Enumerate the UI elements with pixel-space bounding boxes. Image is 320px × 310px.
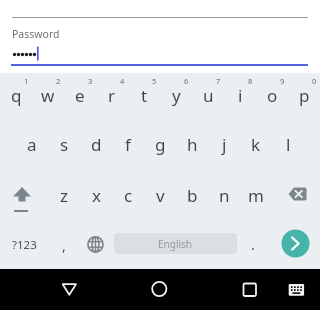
button[interactable]: f — [112, 124, 144, 164]
button[interactable] — [139, 269, 179, 310]
button[interactable]: English — [114, 233, 237, 254]
staticText: n — [219, 184, 230, 207]
button[interactable]: a — [16, 124, 48, 164]
button[interactable]: o — [256, 75, 288, 115]
staticText: q — [11, 84, 22, 107]
staticText: p — [299, 84, 310, 107]
button[interactable]: ?123 — [2, 225, 46, 265]
staticText: j — [222, 133, 227, 156]
staticText: English — [158, 237, 193, 251]
button[interactable]: . — [237, 224, 269, 264]
button[interactable]: x — [80, 175, 112, 215]
staticText: t — [141, 84, 148, 107]
staticText: z — [60, 184, 68, 207]
button[interactable]: c — [112, 175, 144, 215]
staticText: b — [187, 184, 198, 207]
staticText: i — [238, 84, 243, 107]
button[interactable]: e — [64, 75, 96, 115]
staticText: 0 — [312, 76, 317, 86]
staticText: d — [91, 133, 102, 156]
staticText: x — [92, 184, 101, 207]
button[interactable]: v — [144, 175, 176, 215]
staticText: e — [75, 84, 85, 107]
staticText: 6 — [184, 76, 189, 86]
staticText: 8 — [248, 76, 253, 86]
staticText: h — [187, 133, 198, 156]
staticText: 2 — [56, 76, 61, 86]
button[interactable]: u — [192, 75, 224, 115]
button[interactable] — [79, 228, 111, 262]
button[interactable]: i — [224, 75, 256, 115]
staticText: g — [155, 133, 166, 156]
staticText: m — [248, 184, 264, 207]
staticText: . — [251, 235, 255, 254]
button[interactable]: m — [240, 175, 272, 215]
button[interactable]: t — [128, 75, 160, 115]
button[interactable] — [229, 269, 269, 310]
button[interactable]: n — [208, 175, 240, 215]
button[interactable]: b — [176, 175, 208, 215]
button[interactable]: j — [208, 124, 240, 164]
button[interactable]: p — [288, 75, 320, 115]
staticText: v — [156, 184, 165, 207]
staticText: ?123 — [12, 237, 37, 253]
button[interactable]: h — [176, 124, 208, 164]
staticText: l — [286, 133, 291, 156]
button[interactable] — [279, 228, 312, 260]
button[interactable] — [281, 179, 313, 215]
staticText: o — [267, 84, 278, 107]
button[interactable]: k — [240, 124, 272, 164]
staticText: 5 — [152, 76, 157, 86]
button[interactable]: r — [96, 75, 128, 115]
staticText: 4 — [120, 76, 125, 86]
button[interactable]: g — [144, 124, 176, 164]
staticText: Password — [12, 27, 60, 41]
staticText: w — [41, 84, 55, 107]
staticText: s — [60, 133, 69, 156]
staticText: u — [203, 84, 214, 107]
button[interactable] — [6, 179, 38, 215]
staticText: y — [172, 84, 181, 107]
button[interactable]: d — [80, 124, 112, 164]
button[interactable]: y — [160, 75, 192, 115]
staticText: k — [251, 133, 261, 156]
staticText: 9 — [280, 76, 285, 86]
staticText: a — [27, 133, 37, 156]
staticText: r — [108, 84, 116, 107]
staticText: 3 — [88, 76, 93, 86]
button[interactable]: s — [48, 124, 80, 164]
button[interactable]: l — [272, 124, 304, 164]
staticText: , — [62, 236, 66, 255]
staticText: f — [125, 133, 131, 156]
button[interactable]: q — [0, 75, 32, 115]
staticText: 7 — [216, 76, 221, 86]
button[interactable]: , — [48, 225, 80, 265]
button[interactable]: w — [32, 75, 64, 115]
button[interactable] — [281, 269, 311, 310]
staticText: c — [124, 184, 133, 207]
button[interactable] — [49, 269, 89, 310]
staticText: 1 — [24, 76, 29, 86]
button[interactable]: z — [48, 175, 80, 215]
